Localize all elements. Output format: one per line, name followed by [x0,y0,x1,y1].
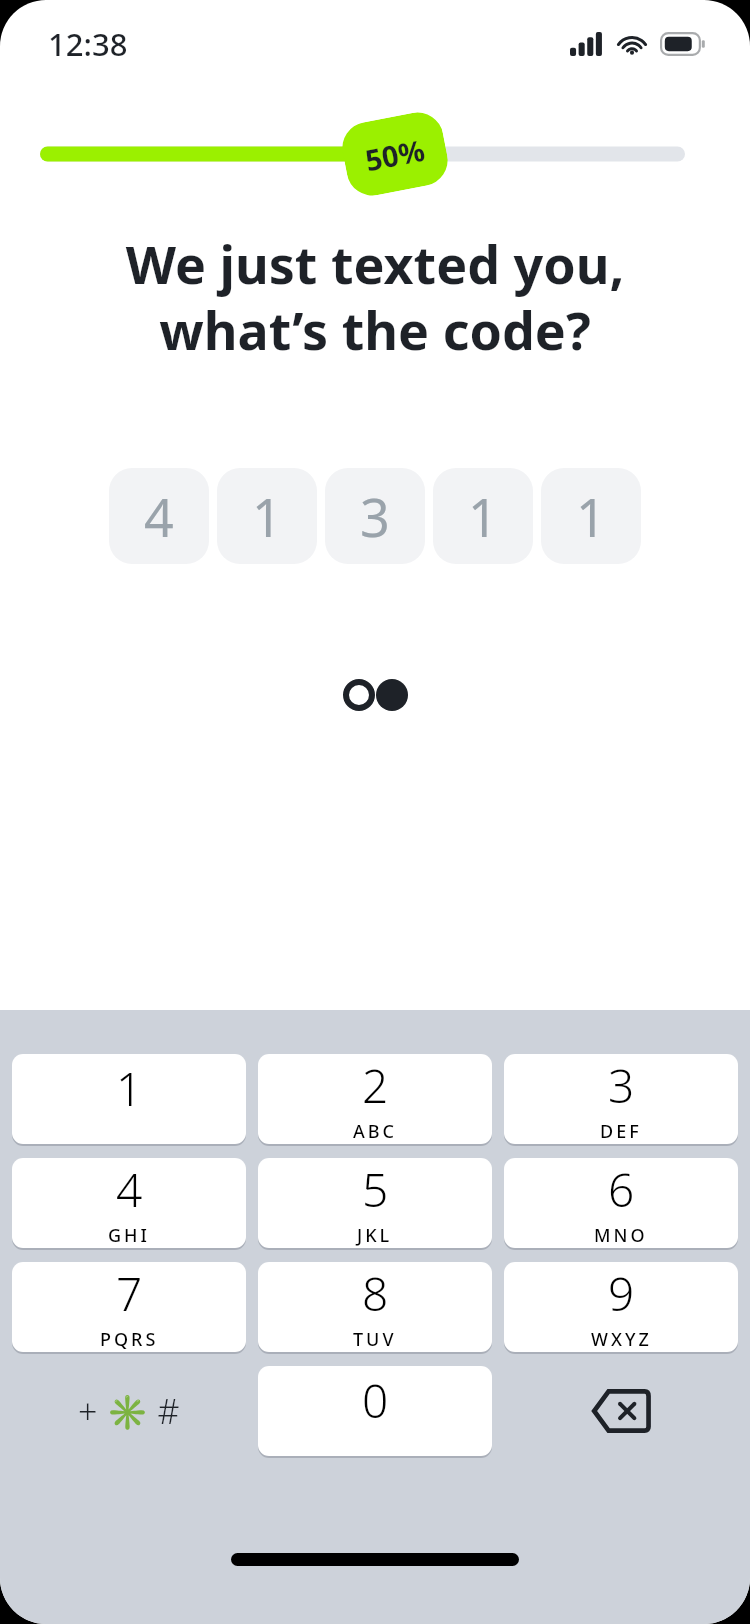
staticText: 5 [362,1158,389,1221]
staticText: 1 [116,1057,143,1120]
button[interactable]: Delete [504,1366,738,1456]
staticText: GHI [108,1223,150,1248]
button[interactable]: 9 [504,1262,738,1352]
button[interactable]: 3 [504,1054,738,1144]
button[interactable]: 7 [12,1262,246,1352]
button[interactable]: 50% [338,108,452,200]
staticText: We just texted you, what’s the code? [40,228,710,365]
button[interactable]: Plus star hash [12,1366,246,1456]
staticText: 9 [608,1262,635,1325]
staticText: WXYZ [591,1327,652,1352]
staticText: PQRS [100,1327,159,1352]
staticText: 0 [362,1369,389,1432]
button[interactable]: 4 [109,468,209,564]
staticText: 4 [116,1158,143,1221]
staticText: 12:38 [48,23,128,65]
button[interactable]: 1 [433,468,533,564]
staticText: MNO [594,1223,648,1248]
staticText: + ✳ # [78,1388,180,1434]
staticText: JKL [357,1223,393,1248]
staticText: 6 [608,1158,635,1221]
button[interactable]: 3 [325,468,425,564]
staticText: DEF [600,1119,642,1144]
staticText: 1 [576,481,606,552]
staticText: TUV [353,1327,397,1352]
button[interactable]: 1 [541,468,641,564]
button[interactable]: 2 [258,1054,492,1144]
button[interactable]: 1 [12,1054,246,1144]
button[interactable]: 8 [258,1262,492,1352]
button[interactable]: 1 [217,468,317,564]
button[interactable]: 6 [504,1158,738,1248]
staticText: 3 [608,1054,635,1117]
staticText: 50% [362,130,428,179]
staticText: ABC [353,1119,397,1144]
button[interactable]: 4 [12,1158,246,1248]
staticText: 4 [144,481,174,552]
staticText: 8 [362,1262,389,1325]
staticText: 3 [360,481,390,552]
button[interactable]: 5 [258,1158,492,1248]
staticText: 1 [468,481,498,552]
staticText: 1 [252,481,282,552]
staticText: 2 [362,1054,389,1117]
staticText: 7 [116,1262,143,1325]
button[interactable]: 0 [258,1366,492,1456]
